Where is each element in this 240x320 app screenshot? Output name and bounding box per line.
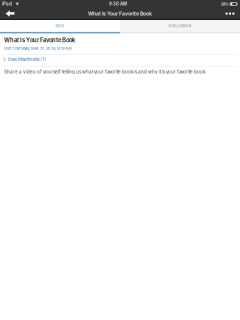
staticText: iPad [2, 1, 12, 7]
staticText: What Is Your Favorite Book [88, 10, 152, 17]
staticText: 9:30 AM [109, 1, 127, 7]
button[interactable]: View Attachments (1) [0, 55, 240, 66]
staticText: Due Thursday, Mar 31, 2016, 9:19 AM [4, 46, 72, 51]
button[interactable]: Back [0, 8, 20, 19]
staticText: View Attachments (1) [8, 57, 47, 62]
staticText: DISCUSSION [168, 24, 191, 28]
staticText: What Is Your Favorite Book [4, 37, 75, 43]
button[interactable]: INFO [0, 20, 120, 33]
staticText: INFO [55, 24, 64, 28]
button[interactable]: DISCUSSION [120, 20, 240, 33]
button[interactable]: More options [220, 8, 240, 19]
staticText: 28% [221, 2, 229, 6]
staticText: Share a video of yourself telling us wha… [4, 69, 206, 74]
